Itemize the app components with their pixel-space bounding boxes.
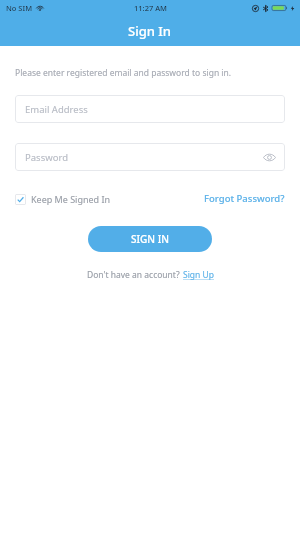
staticText: Sign In [128,22,172,40]
staticText: Sign Up [183,269,214,281]
button[interactable]: SIGN IN [88,226,212,252]
button[interactable]: Email Address [15,95,285,123]
staticText: Keep Me Signed In [31,193,111,205]
staticText: 11:27 AM [134,3,167,13]
staticText: Please enter registered email and passwo… [15,67,232,79]
staticText: No SIM [6,3,33,13]
button[interactable]: Forgot Password? [204,192,285,205]
staticText: Forgot Password? [204,192,285,205]
button[interactable]: Keep Me Signed In [15,193,111,205]
staticText: SIGN IN [131,232,169,246]
staticText: Email Address [25,103,88,116]
button[interactable]: Password [15,143,285,171]
staticText: Password [25,151,68,164]
button[interactable]: Sign Up [183,269,214,281]
button[interactable]: Show password [262,150,276,164]
staticText: Don't have an account? [87,269,180,281]
